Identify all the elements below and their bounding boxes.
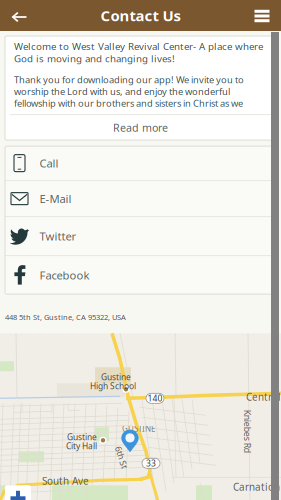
staticText: Thank you for downloading our app! We in… [14, 74, 244, 109]
staticText: High School [90, 380, 136, 392]
staticText: Gustine [101, 371, 131, 383]
staticText: Gustine [67, 431, 97, 443]
staticText: 448 5th St, Gustine, CA 95322, USA [5, 312, 126, 322]
staticText: E-Mail [39, 191, 71, 206]
staticText: 140 [147, 392, 162, 404]
staticText: Welcome to West Valley Revival Center- A… [14, 40, 263, 65]
button[interactable]: E-Mail [5, 181, 276, 216]
button[interactable]: Back [0, 0, 38, 32]
button[interactable]: Twitter [5, 217, 276, 255]
button[interactable]: Call [5, 146, 276, 180]
staticText: Call [39, 155, 58, 171]
button[interactable]: Zoom in [5, 485, 31, 500]
staticText: 33 [146, 457, 156, 469]
staticText: South Ave [42, 474, 89, 488]
button[interactable]: Facebook [5, 256, 276, 294]
staticText: Contact Us [100, 5, 180, 26]
button[interactable]: Read more [10, 115, 271, 140]
staticText: Facebook [39, 267, 89, 283]
staticText: Central [246, 390, 281, 404]
staticText: Read more [113, 120, 168, 135]
staticText: GUSTINE [122, 423, 155, 434]
staticText: Twitter [39, 228, 76, 244]
staticText: Kniebes Rd [226, 425, 269, 437]
staticText: 6th St [110, 451, 133, 463]
staticText: City Hall [66, 440, 97, 452]
button[interactable]: Menu [243, 0, 281, 31]
staticText: Carnation [233, 480, 280, 494]
